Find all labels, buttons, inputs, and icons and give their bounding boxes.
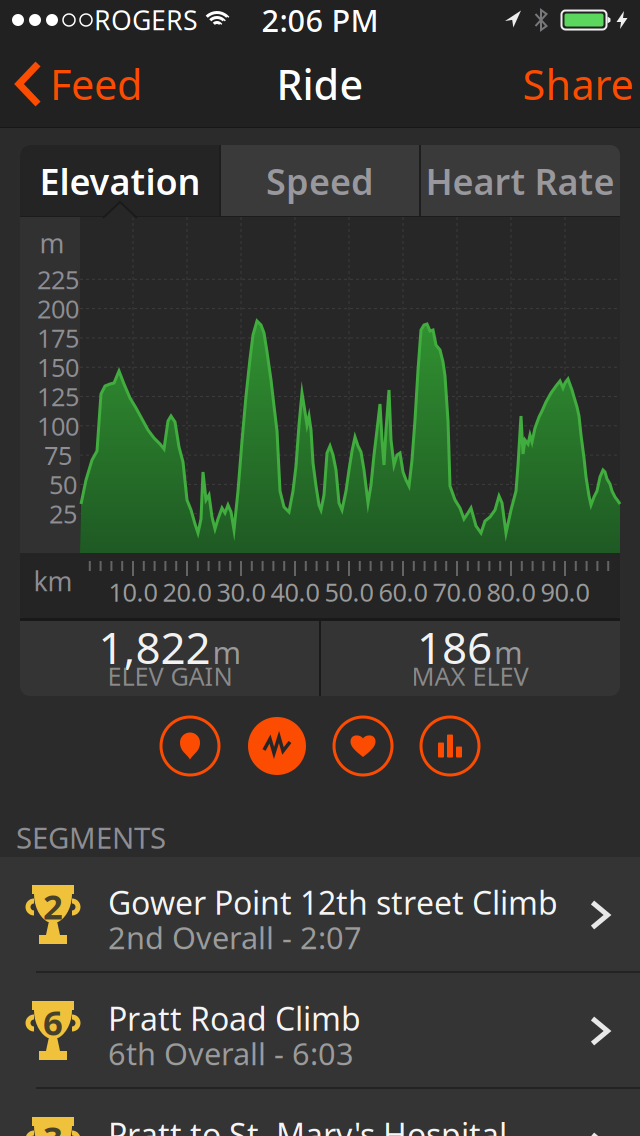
staticText: Heart Rate [425, 157, 614, 205]
staticText: SEGMENTS [16, 818, 166, 857]
staticText: MAX ELEV [411, 659, 528, 693]
button[interactable]: Elevation [20, 145, 220, 217]
staticText: 6th Overall - 6:03 [108, 1033, 354, 1074]
button[interactable]: Share [522, 40, 633, 128]
button[interactable]: Heart rate [334, 717, 392, 775]
staticText: 200 [37, 292, 79, 325]
staticText: Elevation [39, 157, 200, 205]
staticText: Feed [50, 57, 142, 111]
staticText: Gower Point 12th street Climb [108, 881, 558, 923]
staticText: 25 [49, 497, 77, 530]
staticText: 50 [49, 468, 77, 501]
staticText: 6 [43, 999, 63, 1045]
staticText: 90.0 [540, 575, 589, 609]
button[interactable]: Analysis [248, 717, 306, 775]
staticText: Share [522, 57, 633, 111]
button[interactable]: Heart Rate [420, 145, 620, 217]
staticText: 1,822 [98, 618, 210, 676]
staticText: 125 [37, 380, 79, 413]
staticText: ROGERS [94, 2, 198, 38]
staticText: Ride [276, 57, 363, 111]
staticText: m [494, 632, 523, 672]
staticText: 80.0 [486, 575, 535, 609]
button[interactable]: Feed [19, 40, 142, 128]
staticText: 2:06 PM [261, 0, 378, 40]
button[interactable]: Speed [220, 145, 420, 217]
staticText: 150 [37, 350, 79, 384]
staticText: 186 [417, 618, 492, 676]
staticText: 10.0 [108, 575, 157, 609]
staticText: Speed [266, 157, 374, 205]
staticText: 175 [37, 321, 79, 355]
staticText: Pratt Road Climb [108, 997, 361, 1039]
staticText: 60.0 [378, 575, 427, 609]
staticText: 70.0 [432, 575, 481, 609]
staticText: ELEV GAIN [107, 659, 232, 693]
staticText: 50.0 [324, 575, 373, 609]
staticText: 20.0 [162, 575, 211, 609]
staticText: 225 [37, 262, 79, 296]
staticText: m [212, 632, 241, 672]
staticText: 75 [44, 438, 72, 472]
staticText: 2 [43, 883, 63, 929]
button[interactable]: 2 [0, 857, 640, 973]
button[interactable]: Map [161, 717, 219, 775]
staticText: km [33, 563, 72, 599]
staticText: Pratt to St. Mary's Hospital [108, 1113, 507, 1136]
button[interactable]: 6 [0, 973, 640, 1089]
staticText: m [39, 225, 64, 261]
staticText: 40.0 [270, 575, 319, 609]
button[interactable]: Statistics [421, 717, 479, 775]
staticText: 2nd Overall - 2:07 [108, 917, 362, 958]
staticText: 3 [43, 1115, 63, 1136]
button[interactable]: 3 [0, 1089, 640, 1136]
staticText: 100 [37, 409, 79, 443]
staticText: 30.0 [216, 575, 265, 609]
